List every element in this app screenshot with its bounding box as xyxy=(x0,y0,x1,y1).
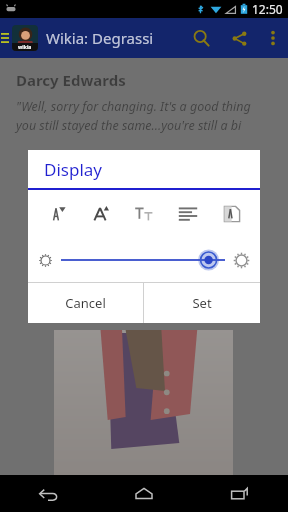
button[interactable]: Cancel xyxy=(28,283,143,323)
button[interactable]: Share xyxy=(220,18,258,58)
staticText: Darcy Edwards xyxy=(16,70,126,90)
button[interactable]: Recent apps xyxy=(192,475,288,512)
button[interactable]: Increase text size xyxy=(78,190,122,238)
button[interactable]: Text alignment xyxy=(166,190,210,238)
staticText: Cancel xyxy=(65,294,106,312)
button[interactable]: Wikia app icon xyxy=(12,25,38,51)
staticText: "Well, sorry for changing. It's a good t… xyxy=(16,98,272,134)
staticText: Wikia: Degrassi xyxy=(46,28,154,48)
staticText: Display xyxy=(44,158,102,181)
button[interactable]: Home xyxy=(96,475,192,512)
staticText: Set xyxy=(192,294,212,312)
button[interactable]: Set xyxy=(144,283,260,323)
button[interactable]: Search xyxy=(182,18,220,58)
button[interactable]: Font style xyxy=(122,190,166,238)
staticText: wikia xyxy=(18,44,32,51)
button[interactable]: Theme xyxy=(210,190,254,238)
button[interactable]: Brightness xyxy=(61,245,225,275)
button[interactable]: More options xyxy=(258,18,288,58)
button[interactable]: Decrease text size xyxy=(34,190,78,238)
staticText: 12:50 xyxy=(252,1,283,17)
button[interactable]: Back xyxy=(0,475,96,512)
button[interactable]: Open navigation drawer xyxy=(0,18,10,58)
